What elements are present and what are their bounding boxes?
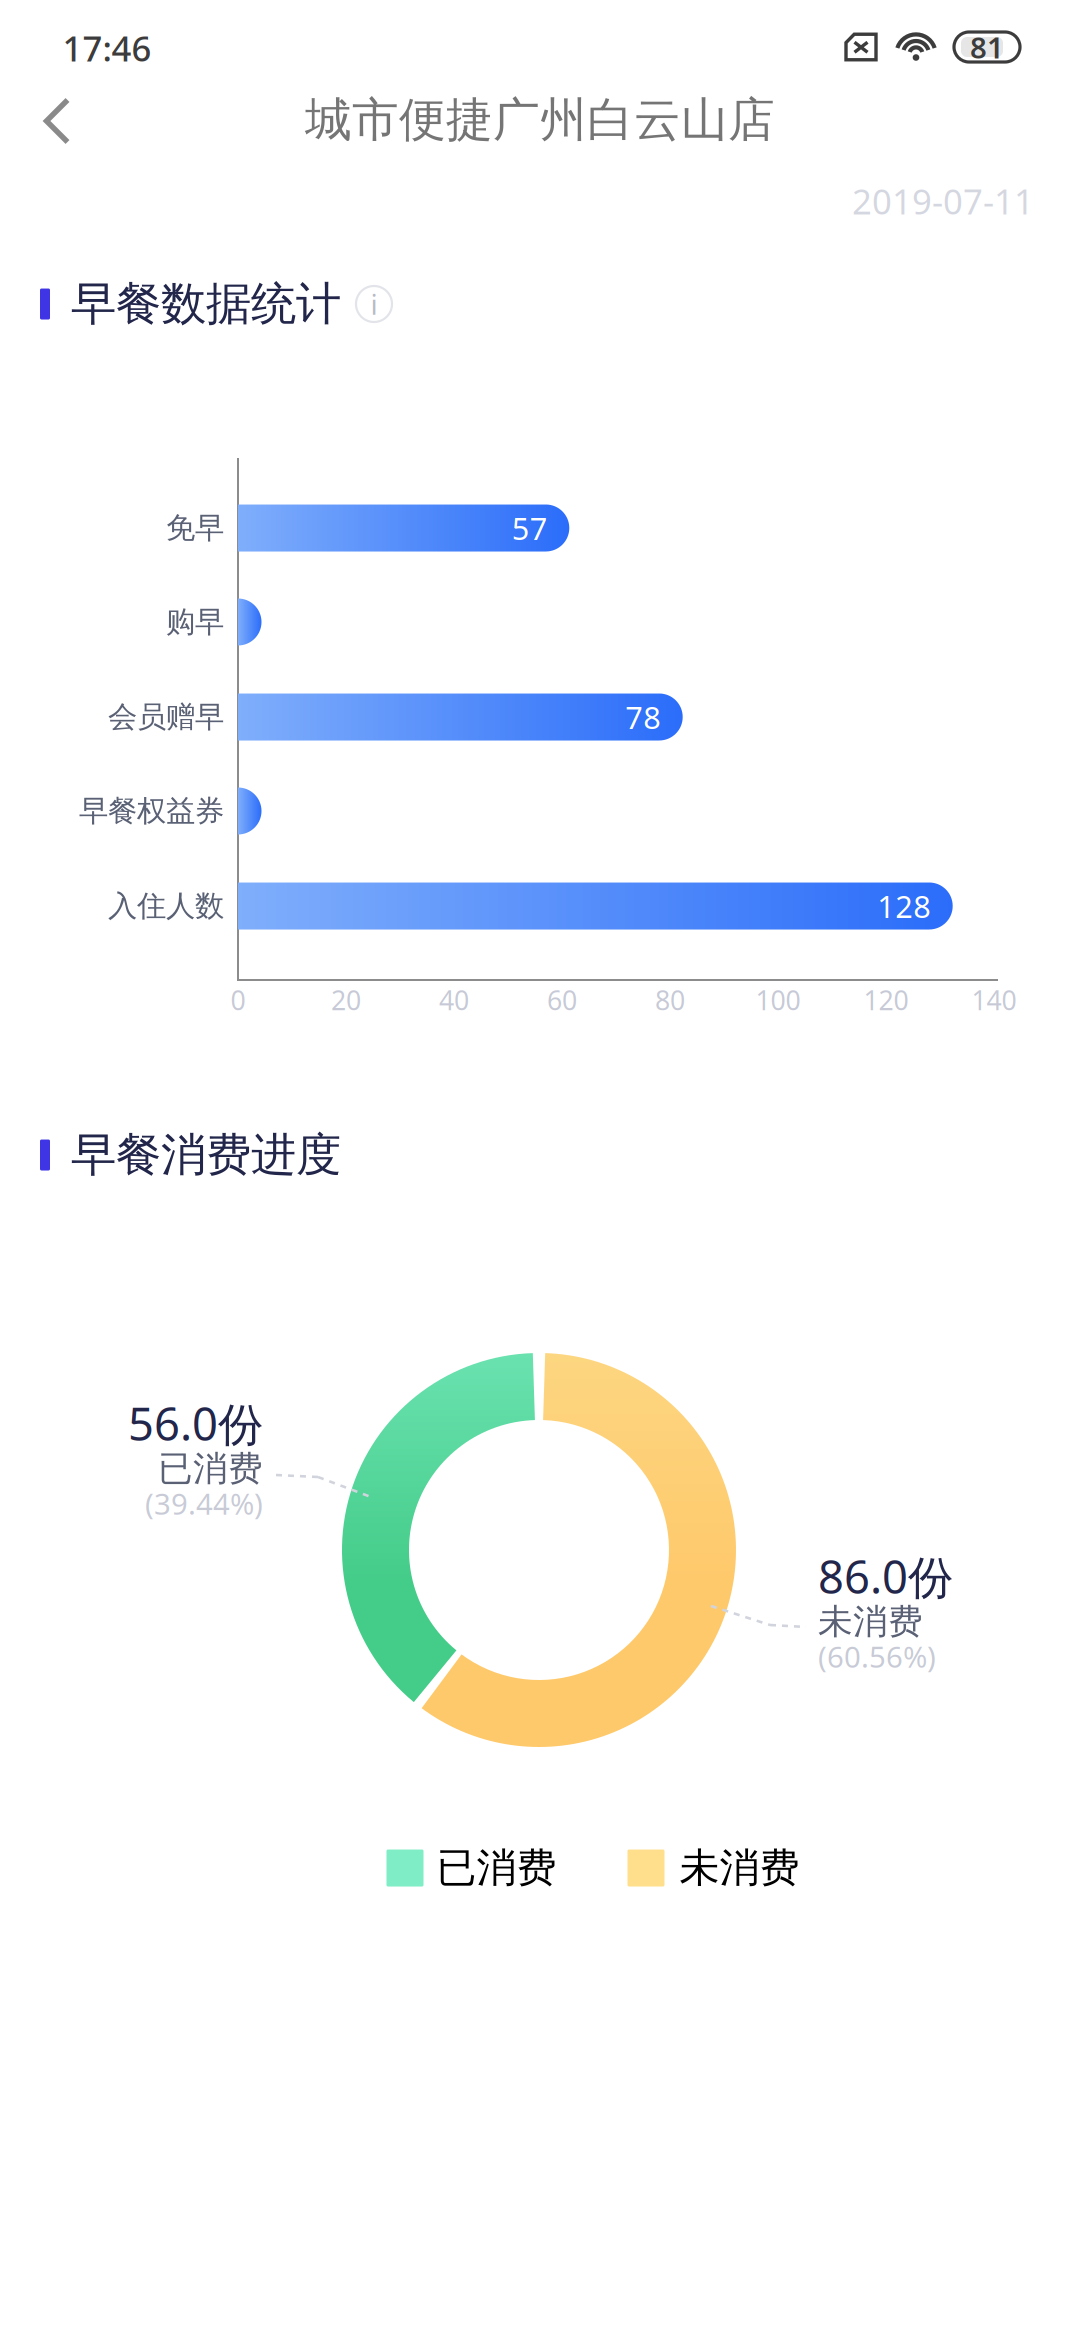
staticText: i [370,285,377,323]
staticText: 早餐权益券 [79,793,224,829]
staticText: 17:46 [62,25,151,71]
staticText: 86.0份 [818,1546,953,1606]
staticText: 56.0份 [128,1393,263,1453]
staticText: 会员赠早 [108,699,224,735]
staticText: 已消费 [158,1447,263,1490]
staticText: 57 [512,508,548,548]
staticText: 80 [655,982,685,1018]
staticText: (60.56%) [818,1637,936,1676]
staticText: 81 [970,27,1004,66]
staticText: 20 [331,982,361,1018]
staticText: 78 [625,697,661,737]
staticText: 2019-07-11 [852,178,1034,224]
staticText: 128 [877,886,931,926]
staticText: 40 [439,982,469,1018]
staticText: 早餐数据统计 [71,276,341,332]
staticText: 城市便捷广州白云山店 [305,91,775,149]
staticText: 120 [863,982,908,1018]
staticText: 已消费 [436,1843,556,1892]
staticText: 0 [230,982,245,1018]
staticText: 早餐消费进度 [71,1127,341,1183]
button[interactable]: 早餐数据统计说明 [341,281,392,327]
button[interactable]: 返回 [13,71,100,171]
staticText: 未消费 [679,1843,799,1892]
staticText: 100 [755,982,800,1018]
staticText: 免早 [166,510,224,546]
staticText: 未消费 [818,1600,923,1643]
staticText: 购早 [166,604,224,640]
staticText: 60 [547,982,577,1018]
staticText: (39.44%) [145,1484,263,1523]
staticText: 140 [971,982,1016,1018]
staticText: 入住人数 [108,888,224,924]
